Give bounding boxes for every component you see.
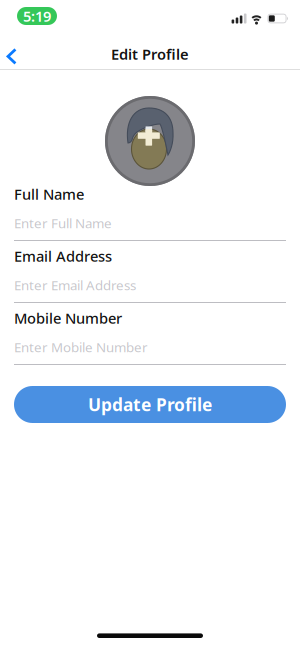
staticText: Full Name: [14, 184, 84, 204]
button[interactable]: Enter Email Address: [14, 262, 286, 303]
button[interactable]: Enter Full Name: [14, 200, 286, 241]
staticText: Email Address: [14, 246, 112, 266]
button[interactable]: Enter Mobile Number: [14, 324, 286, 365]
button[interactable]: Add profile photo: [105, 96, 195, 186]
button[interactable]: Update Profile: [14, 386, 286, 423]
staticText: Enter Mobile Number: [14, 338, 148, 356]
staticText: Edit Profile: [111, 44, 189, 64]
staticText: 5:19: [23, 6, 51, 26]
staticText: Enter Email Address: [14, 276, 136, 294]
staticText: Enter Full Name: [14, 214, 112, 232]
staticText: Update Profile: [88, 393, 212, 416]
staticText: Mobile Number: [14, 308, 122, 328]
button[interactable]: Back: [0, 36, 18, 65]
button[interactable]: Return to call: [17, 7, 57, 25]
